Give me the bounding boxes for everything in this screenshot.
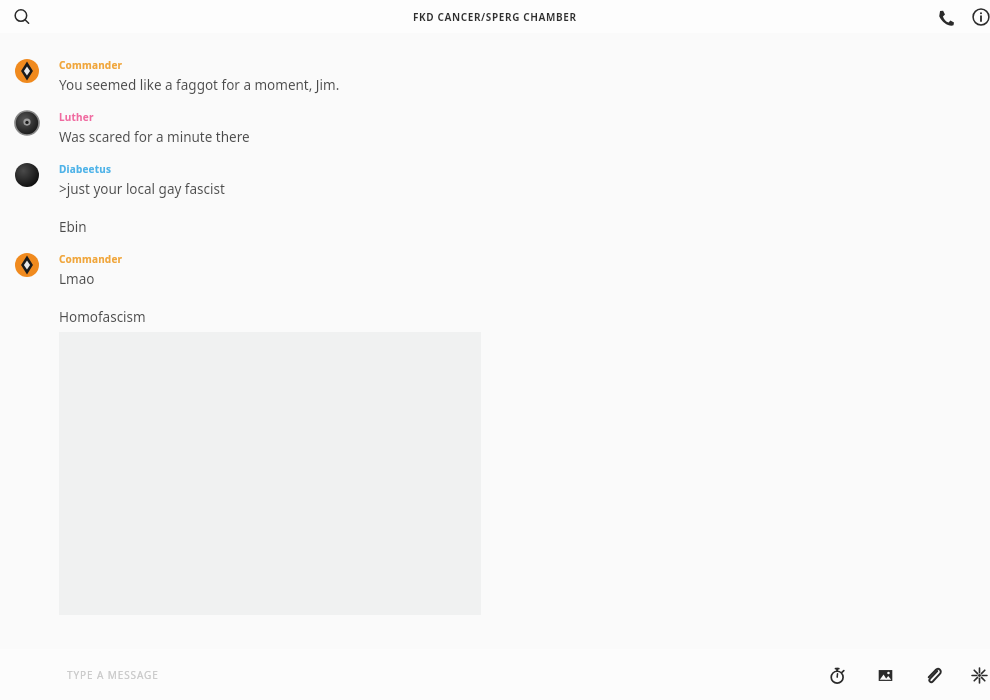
button[interactable]: Commander [0, 252, 990, 326]
staticText: Ebin [59, 218, 87, 236]
staticText: Homofascism [59, 308, 146, 326]
button[interactable]: Info [966, 2, 990, 32]
button[interactable]: Timer [816, 654, 858, 696]
staticText: Commander [59, 252, 123, 266]
button[interactable]: Attach file [912, 654, 954, 696]
staticText: Was scared for a minute there [59, 128, 250, 146]
button[interactable]: Send photo [864, 654, 906, 696]
button[interactable]: Luther [0, 110, 990, 146]
staticText: >just your local gay fascist [59, 180, 225, 198]
button[interactable]: TYPE A MESSAGE [67, 668, 990, 682]
staticText: Commander [59, 58, 123, 72]
staticText: Luther [59, 110, 94, 124]
staticText: You seemed like a faggot for a moment, J… [59, 76, 340, 94]
button[interactable]: Commander [0, 58, 990, 94]
button[interactable]: Effects [958, 654, 990, 696]
staticText: TYPE A MESSAGE [67, 668, 159, 682]
staticText: FKD CANCER/SPERG CHAMBER [413, 10, 577, 24]
staticText: Diabeetus [59, 162, 112, 176]
button[interactable]: Search [6, 1, 38, 33]
staticText: Lmao [59, 270, 95, 288]
button[interactable]: Diabeetus [0, 162, 990, 236]
button[interactable]: Call [930, 2, 960, 32]
